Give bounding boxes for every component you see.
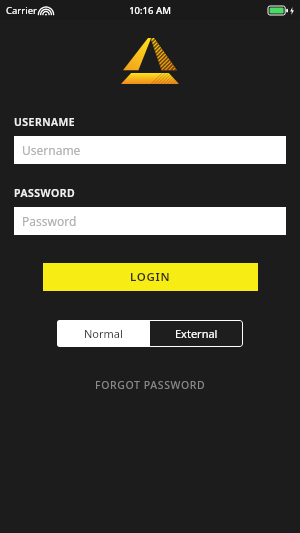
button[interactable]: FORGOT PASSWORD: [85, 373, 216, 397]
button[interactable]: LOGIN: [43, 263, 258, 291]
button[interactable]: Password: [14, 207, 286, 235]
staticText: 10:16 AM: [129, 4, 171, 17]
staticText: LOGIN: [130, 269, 171, 285]
button[interactable]: External: [150, 320, 243, 347]
button[interactable]: Username: [14, 136, 286, 164]
button[interactable]: Normal: [57, 320, 150, 347]
staticText: USERNAME: [14, 115, 76, 129]
staticText: Carrier: [6, 4, 37, 17]
staticText: Normal: [84, 326, 123, 341]
staticText: PASSWORD: [14, 186, 76, 200]
staticText: External: [175, 326, 218, 341]
staticText: Username: [22, 142, 81, 158]
staticText: FORGOT PASSWORD: [95, 378, 206, 392]
staticText: Password: [22, 213, 77, 229]
